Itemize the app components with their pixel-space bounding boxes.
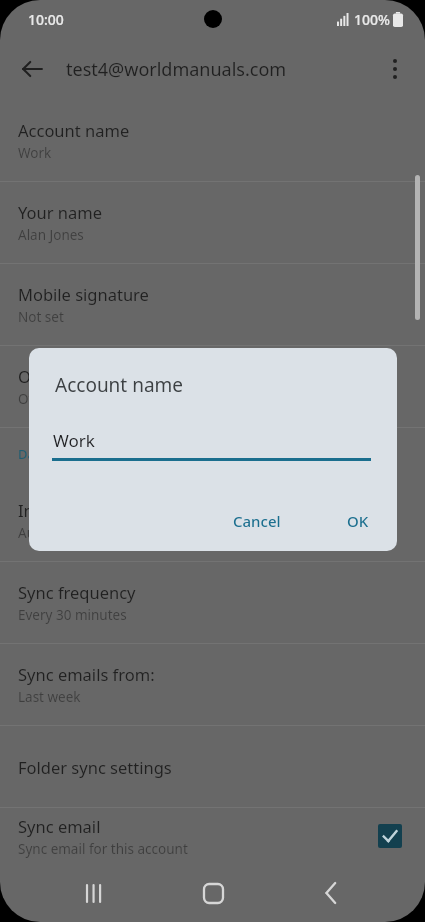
staticText: 10:00 — [28, 10, 64, 29]
staticText: Last week — [18, 688, 81, 706]
staticText: Cancel — [233, 511, 281, 531]
staticText: Mobile signature — [18, 283, 149, 305]
staticText: Inbox check frequency — [18, 499, 193, 521]
button[interactable]: Back — [309, 871, 353, 915]
staticText: Sync email — [18, 815, 101, 837]
button[interactable]: Home — [191, 871, 235, 915]
staticText: Out of office reply — [18, 365, 157, 387]
button[interactable]: Sync email enabled — [378, 824, 402, 848]
staticText: Sync emails from: — [18, 663, 155, 685]
button[interactable]: Sync emails from: — [0, 644, 425, 725]
button[interactable]: Recent apps — [72, 871, 116, 915]
staticText: Automatic (push) — [18, 524, 127, 542]
staticText: Work — [18, 144, 52, 162]
button[interactable]: Sync frequency — [0, 562, 425, 643]
staticText: Work — [53, 429, 95, 452]
staticText: Not set — [18, 308, 64, 326]
button[interactable]: Back — [10, 47, 54, 91]
button[interactable]: Account name — [0, 100, 425, 181]
staticText: Account name — [55, 372, 184, 398]
staticText: OK — [347, 511, 369, 531]
staticText: Alan Jones — [18, 226, 84, 244]
staticText: Your name — [18, 201, 102, 223]
staticText: Folder sync settings — [18, 756, 172, 778]
staticText: Sync frequency — [18, 581, 136, 603]
button[interactable]: Mobile signature — [0, 264, 425, 345]
staticText: 100% — [354, 10, 390, 29]
button[interactable]: Folder sync settings — [0, 726, 425, 807]
button[interactable]: Out of office reply — [0, 346, 425, 427]
staticText: Every 30 minutes — [18, 606, 127, 624]
button[interactable]: Inbox check frequency — [0, 480, 425, 561]
staticText: test4@worldmanuals.com — [66, 57, 287, 82]
button[interactable]: Sync email — [0, 808, 425, 864]
button[interactable]: More options — [373, 47, 417, 91]
button[interactable]: Cancel — [219, 501, 295, 541]
staticText: Data usage — [18, 445, 89, 463]
staticText: Account name — [18, 119, 130, 141]
button[interactable]: Your name — [0, 182, 425, 263]
staticText: Off — [18, 390, 38, 408]
staticText: Sync email for this account — [18, 840, 188, 858]
button[interactable]: OK — [333, 501, 383, 541]
